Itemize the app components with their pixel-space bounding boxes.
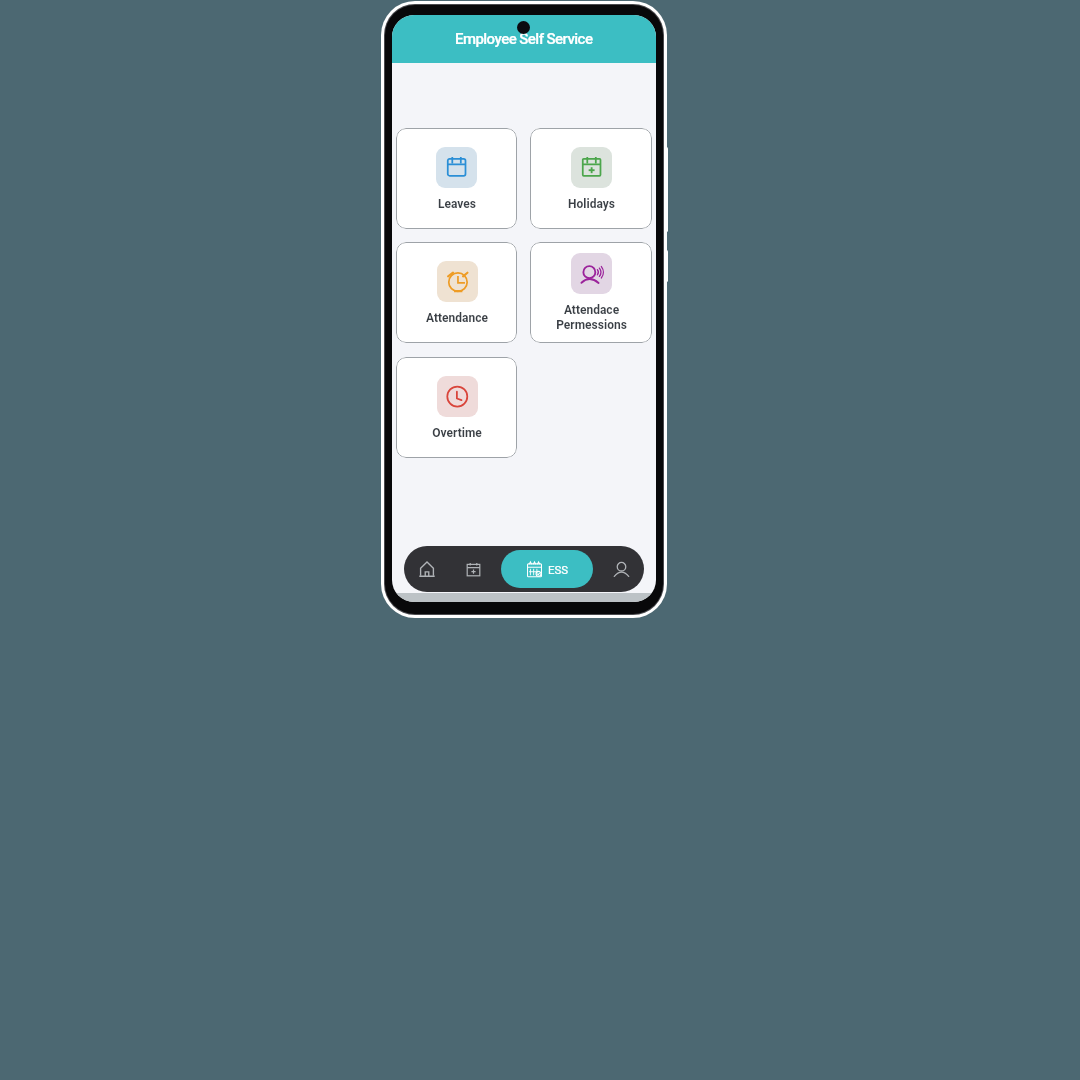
button[interactable]: Home bbox=[404, 546, 450, 592]
button[interactable]: Calendar bbox=[450, 546, 496, 592]
staticText: Employee Self Service bbox=[455, 30, 593, 48]
staticText: Attendace Permessions bbox=[556, 303, 627, 332]
button[interactable]: ESS bbox=[501, 550, 593, 588]
button[interactable]: Profile bbox=[598, 546, 644, 592]
staticText: Holidays bbox=[568, 197, 615, 211]
staticText: Leaves bbox=[438, 197, 476, 211]
staticText: Overtime bbox=[432, 426, 482, 440]
staticText: ESS bbox=[548, 563, 569, 576]
button[interactable]: Leaves bbox=[396, 128, 517, 229]
button[interactable]: Holidays bbox=[530, 128, 652, 229]
button[interactable]: Overtime bbox=[396, 357, 517, 458]
button[interactable]: Attendace Permessions bbox=[530, 242, 652, 343]
button[interactable]: Attendance bbox=[396, 242, 517, 343]
staticText: Attendance bbox=[426, 311, 488, 325]
